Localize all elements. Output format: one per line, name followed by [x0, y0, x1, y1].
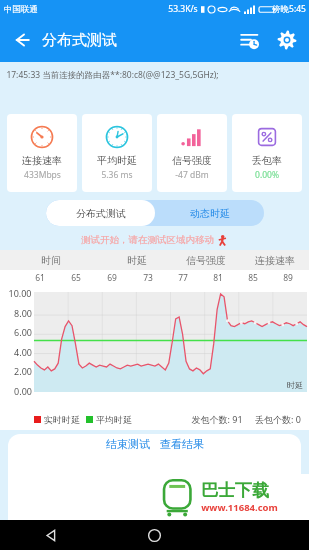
staticText: 73	[143, 272, 153, 284]
staticText: 0.00	[14, 385, 32, 397]
staticText: 丢包个数: 0	[255, 413, 301, 425]
staticText: 81	[213, 272, 223, 284]
staticText: 中国联通	[4, 4, 38, 15]
staticText: 5.36 ms	[101, 169, 133, 181]
staticText: 2.00	[14, 365, 32, 377]
staticText: 时间	[41, 254, 61, 267]
button[interactable]: 查看结果	[155, 437, 209, 451]
staticText: 动态时延	[190, 207, 230, 220]
button[interactable]: 动态时延	[155, 200, 264, 226]
staticText: 结束测试	[106, 437, 150, 451]
staticText: 分布式测试	[76, 207, 126, 220]
staticText: 丢包率	[252, 154, 282, 167]
staticText: 连接速率	[255, 254, 295, 267]
button[interactable]: 分布式测试	[46, 200, 155, 226]
button[interactable]: Back	[0, 520, 103, 550]
staticText: 53.3K/s	[168, 3, 198, 15]
staticText: 77	[178, 272, 188, 284]
staticText: 平均时延	[96, 414, 132, 425]
button[interactable]: 信号强度	[157, 114, 227, 192]
staticText: 连接速率	[22, 154, 62, 167]
staticText: 查看结果	[160, 437, 204, 451]
staticText: 测试开始，请在测试区域内移动	[81, 234, 214, 246]
staticText: 85	[248, 272, 258, 284]
staticText: 信号强度	[172, 154, 212, 167]
staticText: 时延	[127, 254, 147, 267]
staticText: 实时时延	[44, 414, 80, 425]
button[interactable]: 丢包率	[232, 114, 302, 192]
staticText: 10.00	[8, 287, 32, 299]
staticText: 平均时延	[97, 154, 137, 167]
staticText: 433Mbps	[24, 169, 61, 181]
staticText: 分布式测试	[42, 31, 117, 50]
button[interactable]: 平均时延	[82, 114, 152, 192]
button[interactable]: Settings	[271, 24, 303, 56]
staticText: 巴士下载	[201, 480, 269, 501]
staticText: www.11684.com	[201, 501, 278, 514]
staticText: 时延	[287, 380, 303, 390]
staticText: -47 dBm	[175, 169, 209, 181]
staticText: 4.00	[14, 346, 32, 358]
staticText: 6.00	[14, 326, 32, 338]
button[interactable]: 连接速率	[7, 114, 77, 192]
staticText: 61	[35, 272, 45, 284]
staticText: 信号强度	[186, 254, 226, 267]
button[interactable]: 结束测试	[101, 437, 155, 451]
staticText: 65	[71, 272, 81, 284]
button[interactable]: Back	[8, 26, 36, 54]
staticText: 89	[283, 272, 293, 284]
staticText: 8.00	[14, 307, 32, 319]
button[interactable]: History	[233, 24, 265, 56]
staticText: 傍晚5:45	[272, 3, 306, 15]
staticText: 69	[107, 272, 117, 284]
button[interactable]: Home	[103, 520, 206, 550]
staticText: 17:45:33 当前连接的路由器**:80:c8(@@123_5G,5GHz)…	[6, 69, 219, 81]
staticText: 0.00%	[255, 169, 279, 181]
staticText: 发包个数: 91	[191, 413, 243, 425]
